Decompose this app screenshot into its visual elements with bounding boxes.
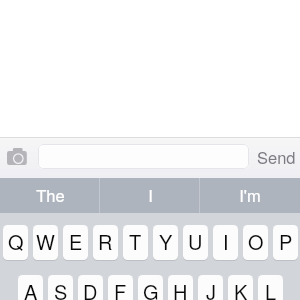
button[interactable]: L [258,275,283,300]
staticText: Send [257,145,296,165]
button[interactable]: E [63,225,88,260]
button[interactable]: U [183,225,208,260]
staticText: Q [8,227,24,256]
button[interactable]: G [138,275,163,300]
staticText: K [234,277,248,300]
button[interactable] [38,144,249,169]
staticText: I [148,183,153,207]
button[interactable]: R [93,225,118,260]
button[interactable]: H [168,275,193,300]
button[interactable]: W [33,225,58,260]
button[interactable]: J [198,275,223,300]
button[interactable]: I [213,225,238,260]
staticText: L [265,277,277,300]
button[interactable]: I [100,178,200,213]
staticText: S [54,277,68,300]
staticText: G [143,277,159,300]
button[interactable]: A [18,275,43,300]
staticText: O [248,227,264,256]
staticText: P [279,227,293,256]
staticText: W [36,227,55,256]
staticText: J [206,277,216,300]
button[interactable]: P [273,225,298,260]
button[interactable]: I'm [200,178,300,213]
button[interactable]: Send [257,145,297,165]
staticText: U [188,227,203,256]
button[interactable]: K [228,275,253,300]
button[interactable]: The [0,178,100,213]
button[interactable]: Y [153,225,178,260]
staticText: The [36,183,65,207]
button[interactable]: F [108,275,133,300]
button[interactable]: D [78,275,103,300]
button[interactable]: T [123,225,148,260]
staticText: I [223,227,229,256]
staticText: R [98,227,113,256]
staticText: F [114,277,127,300]
staticText: E [69,227,83,256]
staticText: H [173,277,188,300]
staticText: D [83,277,98,300]
staticText: A [24,277,38,300]
button[interactable]: Take photo [7,148,27,165]
button[interactable]: O [243,225,268,260]
staticText: I'm [239,183,261,207]
button[interactable]: S [48,275,73,300]
staticText: T [129,227,142,256]
staticText: Y [159,227,173,256]
button[interactable]: Q [3,225,28,260]
